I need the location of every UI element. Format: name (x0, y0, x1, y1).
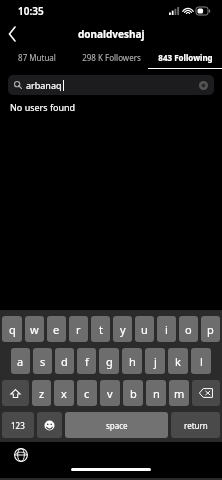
button[interactable]: s (33, 348, 52, 374)
staticText: arbanaq (26, 79, 62, 91)
staticText: h (129, 354, 136, 369)
staticText: u (141, 322, 148, 337)
button[interactable]: q (2, 316, 22, 342)
staticText: n (153, 386, 160, 401)
button[interactable]: v (100, 380, 120, 406)
button[interactable]: 123 (2, 412, 34, 438)
staticText: return (184, 420, 208, 431)
staticText: y (120, 322, 126, 337)
button[interactable]: a (11, 348, 30, 374)
staticText: t (99, 322, 103, 337)
button[interactable]: w (25, 316, 44, 342)
staticText: 87 Mutual (18, 52, 56, 63)
staticText: b (130, 386, 137, 401)
staticText: w (30, 322, 39, 337)
button[interactable]: l (191, 348, 211, 374)
staticText: q (9, 322, 16, 337)
button[interactable]: Backspace (192, 380, 220, 406)
button[interactable]: arbanaq (8, 75, 214, 95)
staticText: p (207, 322, 214, 337)
button[interactable]: p (201, 316, 220, 342)
button[interactable]: u (135, 316, 154, 342)
button[interactable]: f (77, 348, 96, 374)
button[interactable]: 87 Mutual (0, 46, 74, 68)
button[interactable]: Back (0, 22, 24, 46)
staticText: o (185, 322, 192, 337)
button[interactable]: t (91, 316, 110, 342)
staticText: 298 K Followers (82, 52, 141, 63)
button[interactable]: y (113, 316, 132, 342)
button[interactable]: z (32, 380, 51, 406)
button[interactable]: space (65, 412, 168, 438)
button[interactable]: h (122, 348, 142, 374)
button[interactable]: return (171, 412, 220, 438)
staticText: s (40, 354, 46, 369)
staticText: x (61, 386, 67, 401)
button[interactable]: 298 K Followers (74, 46, 148, 68)
staticText: No users found (10, 101, 76, 113)
button[interactable]: b (123, 380, 143, 406)
staticText: 10:35 (18, 4, 44, 18)
staticText: m (174, 386, 185, 401)
button[interactable]: j (145, 348, 165, 374)
staticText: l (200, 354, 203, 369)
staticText: donaldveshaj (78, 27, 145, 41)
staticText: j (154, 354, 157, 369)
button[interactable]: g (99, 348, 119, 374)
staticText: e (53, 322, 60, 337)
staticText: c (84, 386, 90, 401)
staticText: r (76, 322, 81, 337)
staticText: g (106, 354, 113, 369)
button[interactable]: c (77, 380, 97, 406)
button[interactable]: Shift (2, 380, 29, 406)
staticText: z (39, 386, 45, 401)
button[interactable]: o (179, 316, 198, 342)
button[interactable]: k (168, 348, 188, 374)
staticText: v (107, 386, 113, 401)
button[interactable]: 843 Following (148, 46, 222, 68)
button[interactable]: Emoji (37, 412, 62, 438)
staticText: d (61, 354, 68, 369)
staticText: 123 (11, 420, 25, 431)
button[interactable]: d (55, 348, 74, 374)
button[interactable]: x (54, 380, 74, 406)
staticText: space (106, 420, 128, 431)
staticText: i (165, 322, 168, 337)
button[interactable]: e (47, 316, 66, 342)
staticText: a (17, 354, 24, 369)
staticText: 843 Following (158, 52, 213, 63)
button[interactable]: m (169, 380, 189, 406)
button[interactable]: Clear (199, 81, 208, 90)
staticText: k (175, 354, 181, 369)
button[interactable]: r (69, 316, 88, 342)
staticText: f (85, 354, 89, 369)
button[interactable]: n (146, 380, 166, 406)
button[interactable]: i (157, 316, 176, 342)
button[interactable]: Change language (14, 448, 28, 462)
